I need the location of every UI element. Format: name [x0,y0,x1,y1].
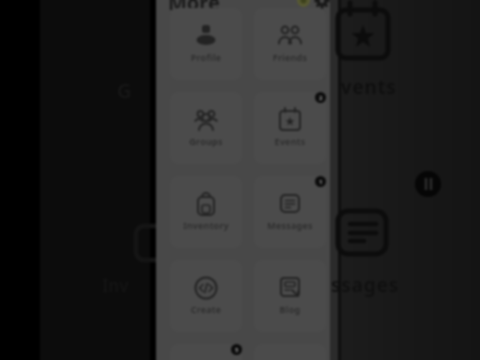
button[interactable]: More [168,0,220,16]
staticText: Events [254,135,326,147]
button[interactable]: Create [170,260,242,332]
button[interactable]: Groups [170,92,242,164]
staticText: Friends [254,51,326,63]
button[interactable]: Gift Cards [170,344,242,360]
staticText: Profile [170,51,242,63]
button[interactable]: Messages [254,176,326,248]
staticText: Create [170,303,242,315]
button[interactable]: Inventory [170,176,242,248]
button[interactable] [297,0,310,7]
staticText: Blog [254,303,326,315]
button[interactable]: Friends [254,8,326,80]
staticText: vents [341,74,397,100]
staticText: 1 [319,178,323,186]
staticText: ssages [331,272,400,298]
staticText: Inventory [170,219,242,231]
button[interactable]: Profile [170,8,242,80]
staticText: 5 [235,346,239,354]
staticText: Groups [170,135,242,147]
button[interactable] [315,0,329,8]
button[interactable]: Events [254,92,326,164]
button[interactable]: Blog [254,260,326,332]
staticText: Messages [254,219,326,231]
staticText: 2 [319,94,323,102]
